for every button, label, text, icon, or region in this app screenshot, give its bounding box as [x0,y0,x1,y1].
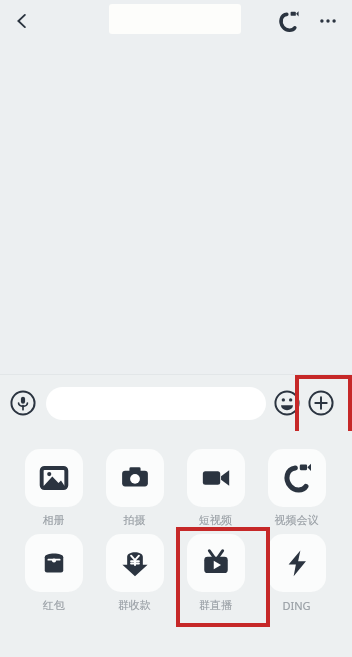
button[interactable]: Back [0,0,44,42]
staticText: DING [262,598,331,613]
staticText: 拍摄 [100,513,169,527]
staticText: 红包 [19,598,88,612]
button[interactable]: Emoji [274,390,300,416]
button[interactable]: 红包 [19,534,88,612]
button[interactable]: Video call [268,0,308,42]
button[interactable]: 群收款 [100,534,169,612]
button[interactable]: 相册 [19,449,88,527]
staticText: 视频会议 [262,513,331,527]
button[interactable]: More actions [308,390,334,416]
staticText: 群收款 [100,598,169,612]
staticText: 相册 [19,513,88,527]
button[interactable]: More options [308,0,348,42]
button[interactable]: 拍摄 [100,449,169,527]
button[interactable]: DING [262,534,331,613]
button[interactable]: 群直播 [181,534,250,612]
button[interactable]: 视频会议 [262,449,331,527]
button[interactable] [46,387,266,420]
button[interactable]: 短视频 [181,449,250,527]
button[interactable]: Voice message [10,390,36,416]
staticText: 短视频 [181,513,250,527]
staticText: 群直播 [181,598,250,612]
